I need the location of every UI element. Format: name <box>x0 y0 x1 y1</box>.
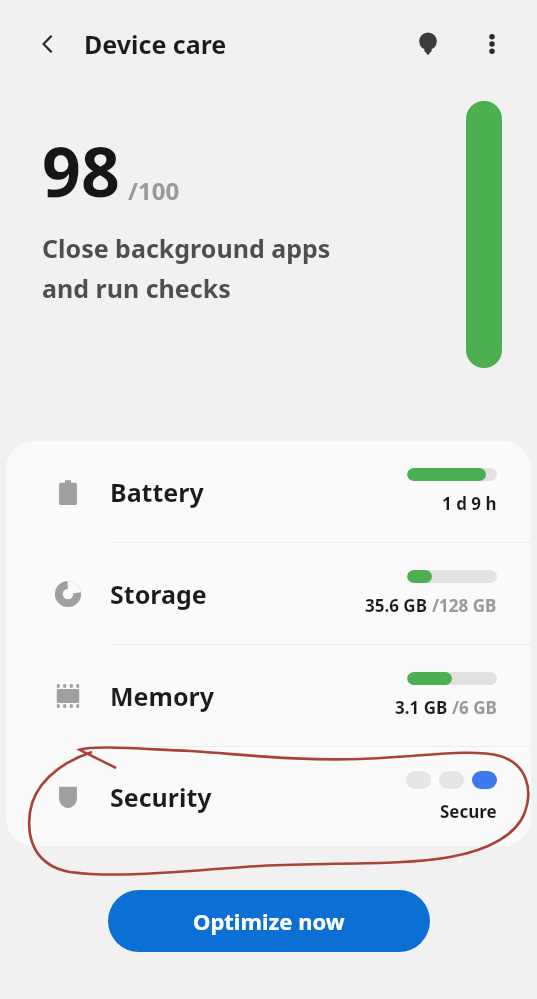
staticText: 35.6 GB <box>365 594 432 617</box>
button[interactable]: Tips <box>405 21 451 67</box>
staticText: Close background apps <box>42 231 331 265</box>
staticText: 3.1 GB <box>395 696 452 719</box>
staticText: 1 d 9 h <box>442 492 497 515</box>
button[interactable]: Storage <box>6 543 531 644</box>
button[interactable]: Security <box>6 747 531 846</box>
staticText: 98 <box>42 124 120 217</box>
button[interactable]: Optimize now <box>108 890 430 952</box>
staticText: Optimize now <box>193 906 345 936</box>
staticText: Device care <box>84 27 227 61</box>
staticText: Memory <box>110 679 214 713</box>
staticText: Battery <box>110 475 204 509</box>
staticText: /100 <box>128 174 180 207</box>
staticText: /6 GB <box>452 696 497 719</box>
button[interactable]: Back <box>26 22 70 66</box>
staticText: /128 GB <box>432 594 497 617</box>
staticText: Storage <box>110 577 207 611</box>
button[interactable]: Memory <box>6 645 531 746</box>
staticText: and run checks <box>42 271 231 305</box>
staticText: Secure <box>440 800 497 823</box>
button[interactable]: More options <box>469 21 515 67</box>
button[interactable]: Battery <box>6 441 531 542</box>
staticText: Security <box>110 780 212 814</box>
